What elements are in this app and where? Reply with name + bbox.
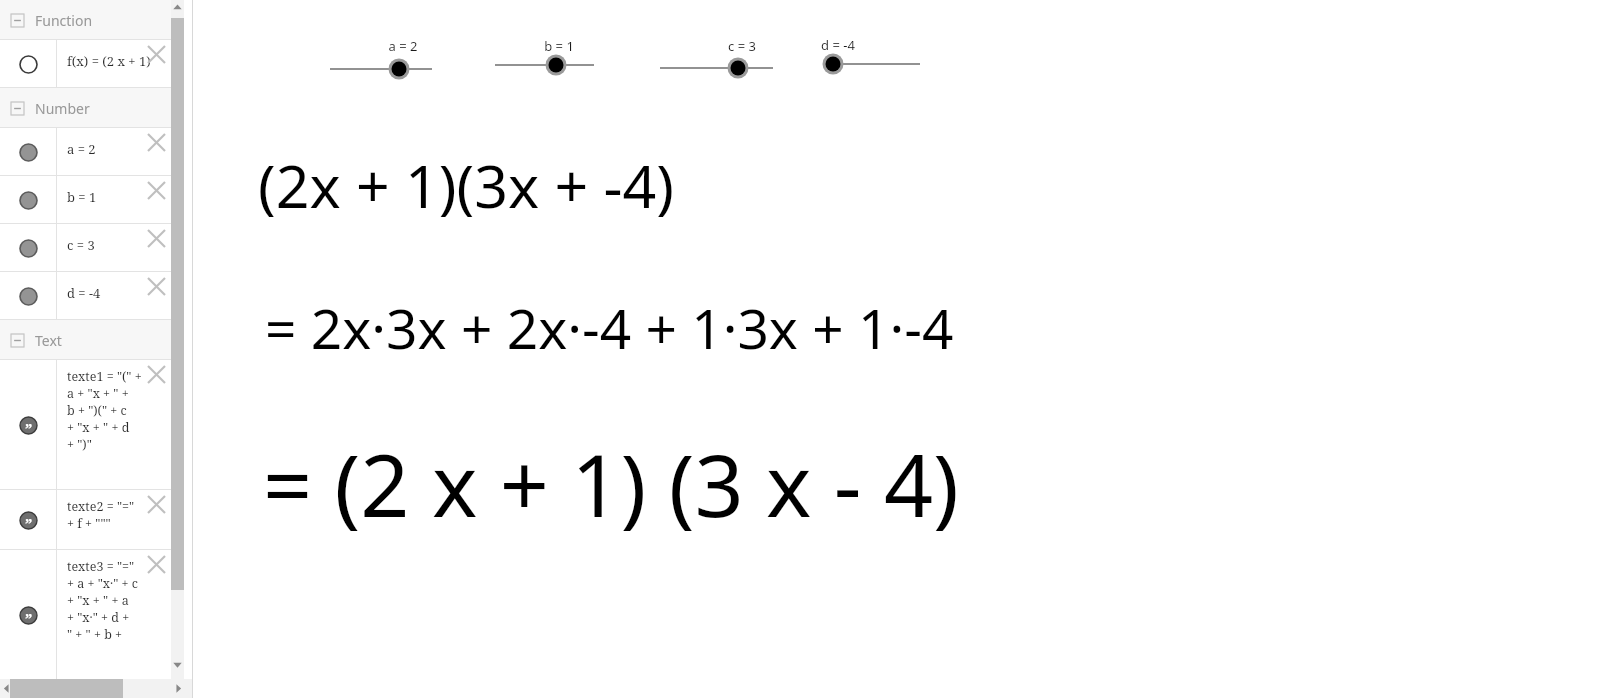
staticText: a + "x + " + bbox=[67, 385, 129, 402]
staticText: + "x + " + d bbox=[67, 419, 130, 436]
button[interactable]: Delete bbox=[144, 226, 168, 250]
button[interactable]: b = 1 bbox=[0, 176, 172, 224]
button[interactable]: d = -4 bbox=[0, 272, 172, 320]
button[interactable]: ” bbox=[0, 490, 172, 550]
button[interactable]: Delete bbox=[144, 362, 168, 386]
staticText: c = 3 bbox=[714, 37, 770, 55]
button[interactable]: a = 2 bbox=[0, 128, 172, 176]
button[interactable]: f(x) = (2 x + 1) bbox=[0, 40, 172, 88]
button[interactable]: ” bbox=[0, 360, 172, 490]
button[interactable]: Delete bbox=[144, 274, 168, 298]
button[interactable]: Slider d = -4 bbox=[814, 48, 934, 80]
staticText: b = 1 bbox=[531, 37, 587, 55]
button[interactable]: Function bbox=[0, 0, 172, 40]
staticText: b + ")(" + c bbox=[67, 402, 127, 419]
staticText: = 2x·3x + 2x·-4 + 1·3x + 1·-4 bbox=[265, 290, 954, 365]
staticText: d = -4 bbox=[67, 284, 101, 302]
button[interactable]: ” bbox=[0, 550, 172, 680]
staticText: Function bbox=[35, 11, 93, 30]
staticText: d = -4 bbox=[810, 36, 866, 54]
staticText: texte3 = "=" bbox=[67, 558, 135, 575]
button[interactable]: Delete bbox=[144, 130, 168, 154]
staticText: b = 1 bbox=[67, 188, 97, 206]
staticText: = (2 x + 1) (3 x - 4) bbox=[263, 425, 959, 542]
staticText: (2x + 1)(3x + -4) bbox=[258, 145, 675, 225]
staticText: c = 3 bbox=[67, 236, 95, 254]
staticText: Text bbox=[35, 331, 62, 350]
button[interactable]: Delete bbox=[144, 42, 168, 66]
button[interactable]: Vertical scrollbar bbox=[171, 0, 184, 698]
staticText: + a + "x·" + c bbox=[67, 575, 138, 592]
staticText: a = 2 bbox=[375, 37, 431, 55]
button[interactable]: Slider c = 3 bbox=[646, 52, 787, 84]
button[interactable]: Delete bbox=[144, 178, 168, 202]
staticText: texte2 = "=" bbox=[67, 498, 135, 515]
button[interactable]: Slider b = 1 bbox=[481, 49, 608, 81]
staticText: Number bbox=[35, 99, 90, 118]
button[interactable]: c = 3 bbox=[0, 224, 172, 272]
staticText: f(x) = (2 x + 1) bbox=[67, 52, 151, 70]
staticText: + ")" bbox=[67, 436, 92, 453]
staticText: ” bbox=[25, 418, 33, 437]
staticText: + "x·" + d + bbox=[67, 609, 130, 626]
button[interactable]: Text bbox=[0, 320, 172, 360]
button[interactable]: Delete bbox=[144, 492, 168, 516]
staticText: ” bbox=[25, 513, 33, 532]
button[interactable]: Delete bbox=[144, 552, 168, 576]
button[interactable]: Horizontal scrollbar bbox=[0, 679, 193, 698]
staticText: ” bbox=[25, 608, 33, 627]
button[interactable]: Number bbox=[0, 88, 172, 128]
staticText: a = 2 bbox=[67, 140, 96, 158]
staticText: " + " + b + bbox=[67, 626, 123, 643]
staticText: + "x + " + a bbox=[67, 592, 129, 609]
button[interactable]: Slider a = 2 bbox=[316, 53, 446, 85]
staticText: + f + """ bbox=[67, 515, 111, 532]
staticText: texte1 = "(" + bbox=[67, 368, 142, 385]
